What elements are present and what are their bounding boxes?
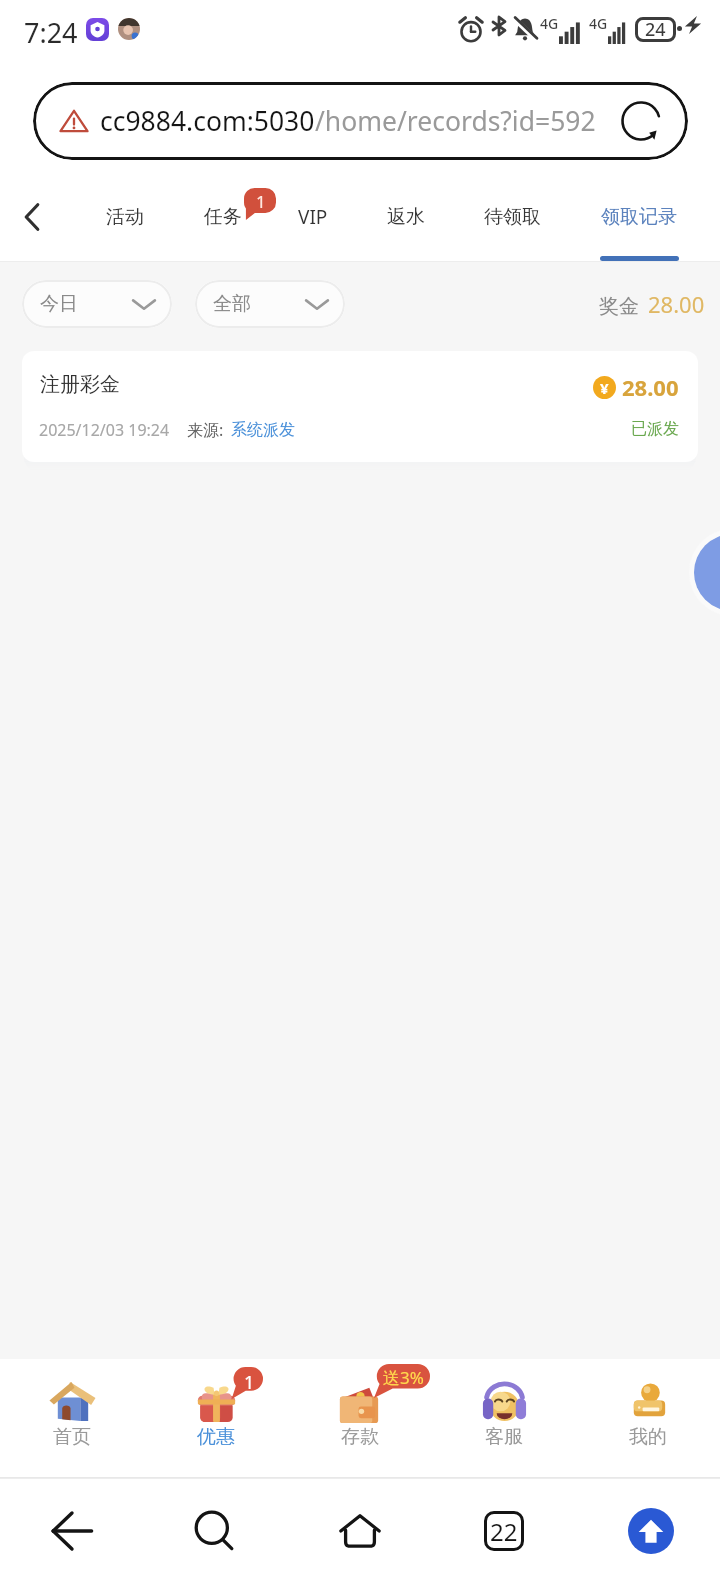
button[interactable]: 返水: [375, 172, 437, 262]
staticText: ¥: [600, 378, 609, 398]
staticText: /home/records?id=592: [315, 103, 596, 139]
staticText: 送3%: [383, 1366, 424, 1389]
button[interactable]: Back: [5, 189, 61, 245]
staticText: 首页: [53, 1425, 91, 1449]
staticText: 活动: [106, 205, 144, 229]
staticText: 22: [490, 1515, 518, 1548]
button[interactable]: Back: [42, 1501, 102, 1561]
staticText: 2025/12/03 19:24: [39, 419, 170, 441]
button[interactable]: Search: [185, 1501, 245, 1561]
staticText: VIP: [298, 204, 328, 230]
staticText: 客服: [485, 1425, 523, 1449]
button[interactable]: Scroll to top: [621, 1501, 681, 1561]
button[interactable]: 领取记录: [587, 172, 691, 262]
staticText: 28.00: [622, 372, 679, 402]
button[interactable]: 首页: [0, 1359, 144, 1478]
button[interactable]: VIP: [273, 172, 353, 262]
staticText: 4G: [540, 14, 559, 33]
staticText: 奖金: [599, 294, 639, 319]
staticText: 返水: [387, 205, 425, 229]
staticText: 全部: [213, 292, 251, 316]
staticText: 28.00: [648, 289, 705, 319]
staticText: 系统派发: [231, 420, 295, 440]
staticText: 领取记录: [601, 205, 677, 229]
button[interactable]: 我的: [576, 1359, 720, 1478]
staticText: 我的: [629, 1425, 667, 1449]
staticText: 1: [256, 190, 266, 213]
staticText: 存款: [341, 1425, 379, 1449]
staticText: 今日: [40, 292, 78, 316]
staticText: 1: [244, 1370, 255, 1395]
staticText: 来源:: [187, 419, 224, 441]
button[interactable]: 注册彩金: [22, 351, 698, 462]
button[interactable]: Open assistant menu: [689, 529, 720, 616]
button[interactable]: Tabs: [474, 1501, 534, 1561]
button[interactable]: 优惠: [144, 1359, 288, 1478]
button[interactable]: 客服: [432, 1359, 576, 1478]
button[interactable]: 活动: [94, 172, 156, 262]
button[interactable]: 存款: [288, 1359, 432, 1478]
button[interactable]: 全部: [195, 280, 345, 328]
staticText: 4G: [589, 14, 608, 33]
staticText: 优惠: [197, 1425, 235, 1449]
button[interactable]: cc9884.com:5030: [33, 82, 688, 160]
staticText: 注册彩金: [40, 372, 120, 397]
staticText: 7:24: [24, 14, 78, 51]
staticText: cc9884.com:5030: [100, 103, 315, 139]
staticText: 已派发: [631, 419, 679, 439]
staticText: 待领取: [484, 205, 541, 229]
staticText: 任务: [204, 205, 242, 229]
button[interactable]: 今日: [22, 280, 172, 328]
button[interactable]: 待领取: [472, 172, 552, 262]
button[interactable]: 任务: [192, 172, 254, 262]
button[interactable]: Home: [330, 1501, 390, 1561]
staticText: 24: [645, 17, 666, 42]
